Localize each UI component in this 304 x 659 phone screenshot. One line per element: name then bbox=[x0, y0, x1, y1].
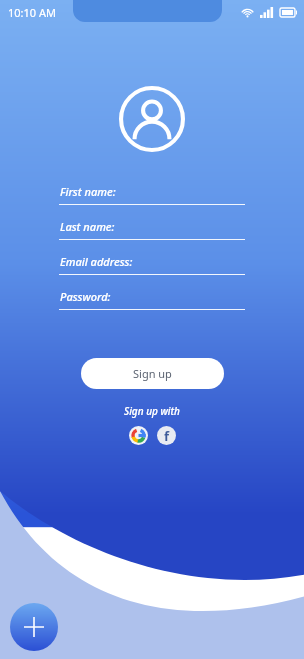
staticText: 10:10 AM bbox=[8, 5, 56, 20]
button[interactable]: Sign up bbox=[81, 358, 224, 389]
staticText: f bbox=[164, 427, 170, 445]
button[interactable]: Password: bbox=[59, 289, 245, 310]
staticText: Sign up bbox=[133, 366, 172, 381]
button[interactable]: Last name: bbox=[59, 219, 245, 240]
staticText: Last name: bbox=[60, 219, 115, 234]
staticText: Sign up with bbox=[124, 404, 180, 418]
staticText: Password: bbox=[60, 289, 111, 304]
button[interactable]: First name: bbox=[59, 184, 245, 205]
button[interactable]: Email address: bbox=[59, 254, 245, 275]
staticText: First name: bbox=[60, 184, 116, 199]
button[interactable]: Sign up with Google bbox=[129, 426, 148, 445]
button[interactable]: Sign up with Facebook bbox=[157, 426, 176, 445]
button[interactable]: Add bbox=[10, 603, 58, 651]
staticText: Email address: bbox=[60, 254, 133, 269]
